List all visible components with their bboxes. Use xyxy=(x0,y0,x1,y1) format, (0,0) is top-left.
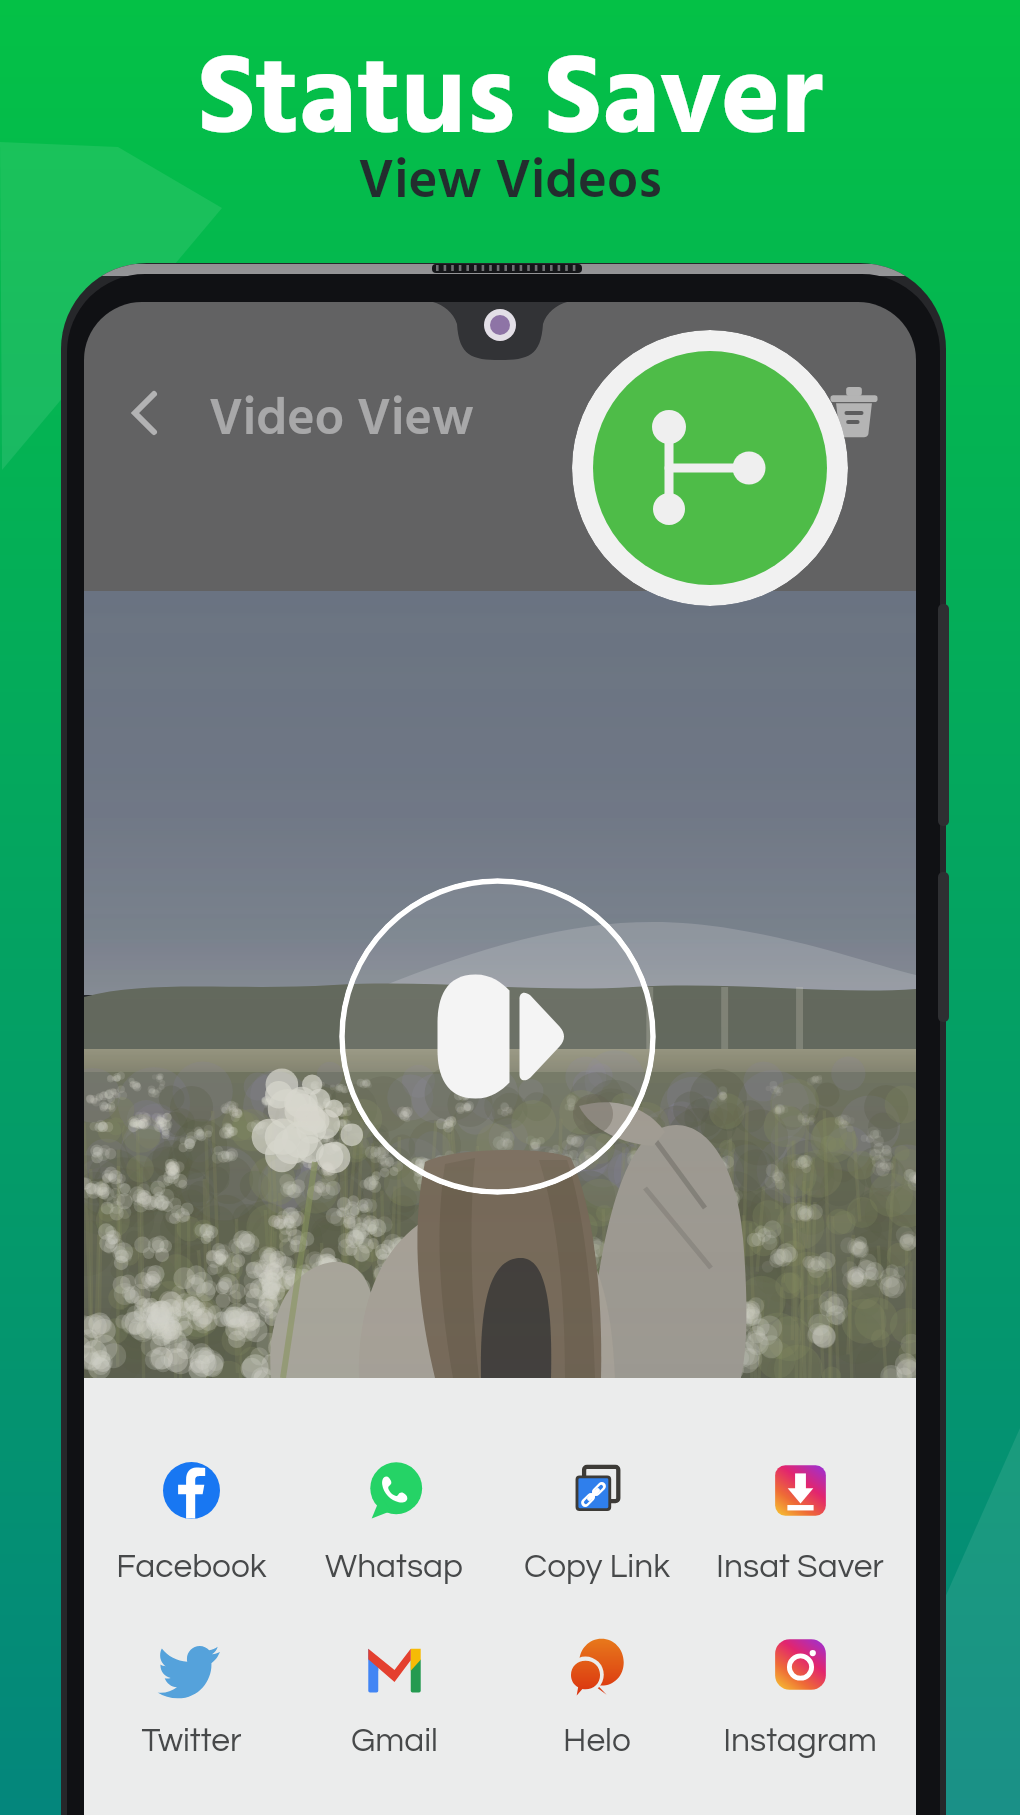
button[interactable]: Twitter xyxy=(92,1636,290,1759)
staticText: Helo xyxy=(563,1724,631,1759)
button[interactable]: Helo xyxy=(498,1636,696,1759)
button[interactable]: Back xyxy=(112,378,182,448)
staticText: Facebook xyxy=(116,1550,267,1585)
button[interactable]: Whatsap xyxy=(295,1462,493,1585)
button[interactable]: Copy Link xyxy=(498,1462,696,1585)
button[interactable]: Gmail xyxy=(295,1636,493,1759)
staticText: Copy Link xyxy=(524,1550,670,1585)
button[interactable]: Insat Saver xyxy=(701,1462,899,1585)
staticText: Instagram xyxy=(723,1724,877,1759)
staticText: Whatsap xyxy=(325,1550,463,1585)
staticText: Gmail xyxy=(351,1724,438,1759)
button[interactable]: Play video xyxy=(339,878,656,1195)
button[interactable]: Share xyxy=(572,330,848,606)
staticText: Insat Saver xyxy=(716,1550,884,1585)
button[interactable]: Instagram xyxy=(701,1636,899,1759)
staticText: View Videos xyxy=(0,139,1020,227)
staticText: Video View xyxy=(209,379,474,462)
button[interactable]: Facebook xyxy=(92,1462,290,1585)
staticText: Status Saver xyxy=(0,13,1020,194)
staticText: Twitter xyxy=(141,1724,242,1759)
button[interactable]: Delete xyxy=(826,383,882,439)
